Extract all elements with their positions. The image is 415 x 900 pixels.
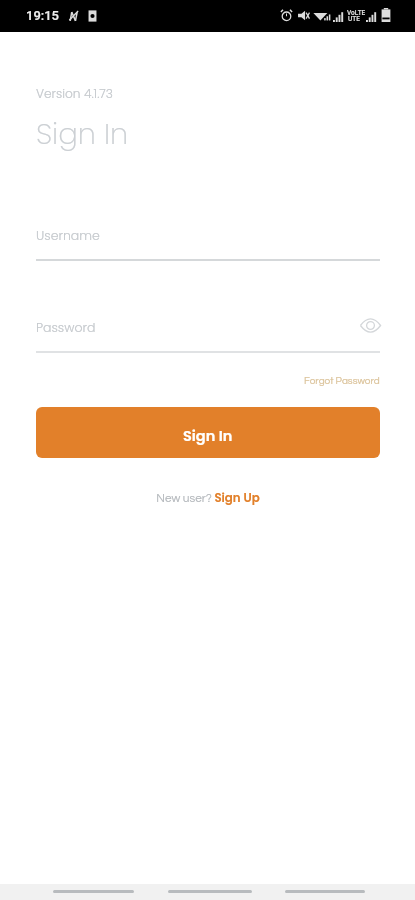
staticText: Forgot Password [304,376,380,386]
staticText: Username [36,227,100,244]
staticText: UTE [348,15,360,23]
button[interactable]: Recent apps [285,884,365,900]
button[interactable]: Forgot Password [292,370,380,392]
button[interactable]: Home [168,884,252,900]
staticText: 19:15 [26,8,60,23]
button[interactable]: Username [36,220,380,261]
button[interactable]: Sign In [36,407,380,458]
button[interactable]: Password [36,312,380,353]
staticText: New user? Sign Up [156,490,260,507]
staticText: Version 4.1.73 [36,85,114,102]
staticText: Password [36,319,96,336]
staticText: VoLTE [347,9,366,17]
button[interactable]: New user? Sign Up [146,487,270,510]
button[interactable]: Show password [357,312,383,338]
button[interactable]: Back [53,884,134,900]
staticText: Sign In [183,426,233,446]
staticText: Sign In [36,114,129,155]
